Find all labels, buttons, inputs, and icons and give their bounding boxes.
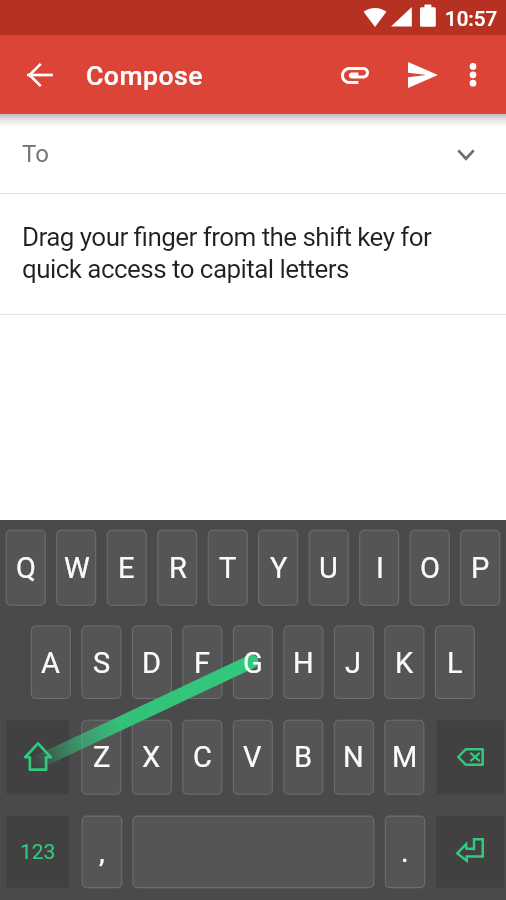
button[interactable]: M — [385, 720, 424, 794]
button[interactable]: W — [57, 530, 96, 605]
button[interactable]: Attach file — [331, 51, 379, 99]
button[interactable]: 123 — [7, 816, 69, 888]
button[interactable]: I — [360, 530, 399, 605]
button[interactable]: To — [0, 114, 506, 194]
button[interactable]: S — [82, 626, 121, 699]
button[interactable]: , — [82, 816, 122, 888]
button[interactable]: Q — [6, 530, 45, 605]
staticText: Drag your finger from the shift key for … — [22, 222, 432, 284]
button[interactable]: F — [183, 626, 222, 699]
staticText: Q — [16, 551, 36, 585]
staticText: A — [41, 646, 60, 680]
button[interactable]: U — [309, 530, 348, 605]
button[interactable]: B — [284, 720, 323, 794]
button[interactable]: C — [183, 720, 222, 794]
staticText: X — [142, 740, 161, 774]
button[interactable]: G — [233, 626, 272, 699]
staticText: G — [243, 646, 263, 680]
staticText: T — [219, 551, 237, 585]
staticText: K — [395, 646, 414, 680]
staticText: Z — [93, 740, 111, 774]
button[interactable]: Z — [82, 720, 121, 794]
staticText: U — [319, 551, 338, 585]
button[interactable]: E — [107, 530, 146, 605]
staticText: W — [64, 551, 90, 585]
staticText: F — [194, 646, 211, 680]
button[interactable]: K — [385, 626, 424, 699]
button[interactable]: Backspace — [437, 720, 504, 794]
button[interactable]: O — [410, 530, 449, 605]
button[interactable]: N — [334, 720, 373, 794]
staticText: I — [376, 551, 384, 585]
staticText: H — [293, 646, 314, 680]
button[interactable]: Space — [133, 816, 374, 888]
button[interactable]: L — [435, 626, 474, 699]
staticText: O — [420, 551, 440, 585]
button[interactable]: Enter — [436, 816, 504, 888]
staticText: B — [294, 740, 313, 774]
button[interactable]: P — [461, 530, 500, 605]
staticText: . — [401, 835, 409, 869]
staticText: S — [93, 646, 111, 680]
button[interactable]: A — [31, 626, 70, 699]
button[interactable]: H — [284, 626, 323, 699]
staticText: L — [447, 646, 463, 680]
staticText: J — [345, 646, 362, 680]
staticText: , — [99, 835, 105, 869]
staticText: E — [118, 551, 135, 585]
staticText: V — [243, 740, 262, 774]
staticText: P — [471, 551, 490, 585]
button[interactable]: Y — [259, 530, 298, 605]
staticText: M — [392, 740, 418, 774]
staticText: Compose — [86, 60, 203, 91]
button[interactable]: Send — [399, 51, 447, 99]
button[interactable]: D — [132, 626, 171, 699]
button[interactable]: R — [158, 530, 197, 605]
staticText: 10:57 — [445, 7, 498, 31]
button[interactable]: X — [132, 720, 171, 794]
button[interactable]: V — [233, 720, 272, 794]
staticText: Y — [270, 551, 288, 585]
staticText: 123 — [20, 840, 56, 865]
staticText: To — [22, 140, 49, 168]
button[interactable]: J — [334, 626, 373, 699]
staticText: R — [169, 551, 187, 585]
button[interactable]: Back — [16, 51, 64, 99]
button[interactable]: Shift — [7, 720, 69, 794]
staticText: C — [193, 740, 212, 774]
button[interactable]: Expand recipients — [446, 134, 486, 174]
button[interactable]: . — [385, 816, 424, 888]
button[interactable]: Drag your finger from the shift key for … — [0, 194, 506, 315]
staticText: N — [343, 740, 364, 774]
staticText: D — [142, 646, 162, 680]
button[interactable]: More options — [449, 51, 497, 99]
button[interactable]: T — [208, 530, 247, 605]
